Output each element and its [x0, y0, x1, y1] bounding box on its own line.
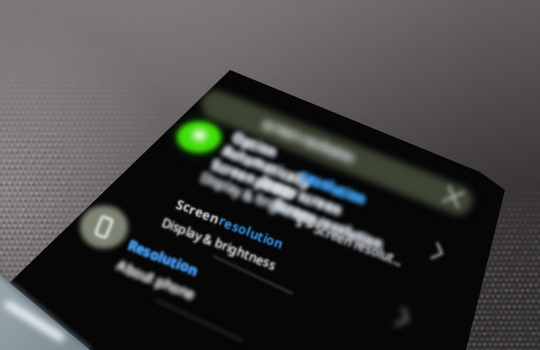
button[interactable]: Settings search results: [0, 0, 540, 350]
